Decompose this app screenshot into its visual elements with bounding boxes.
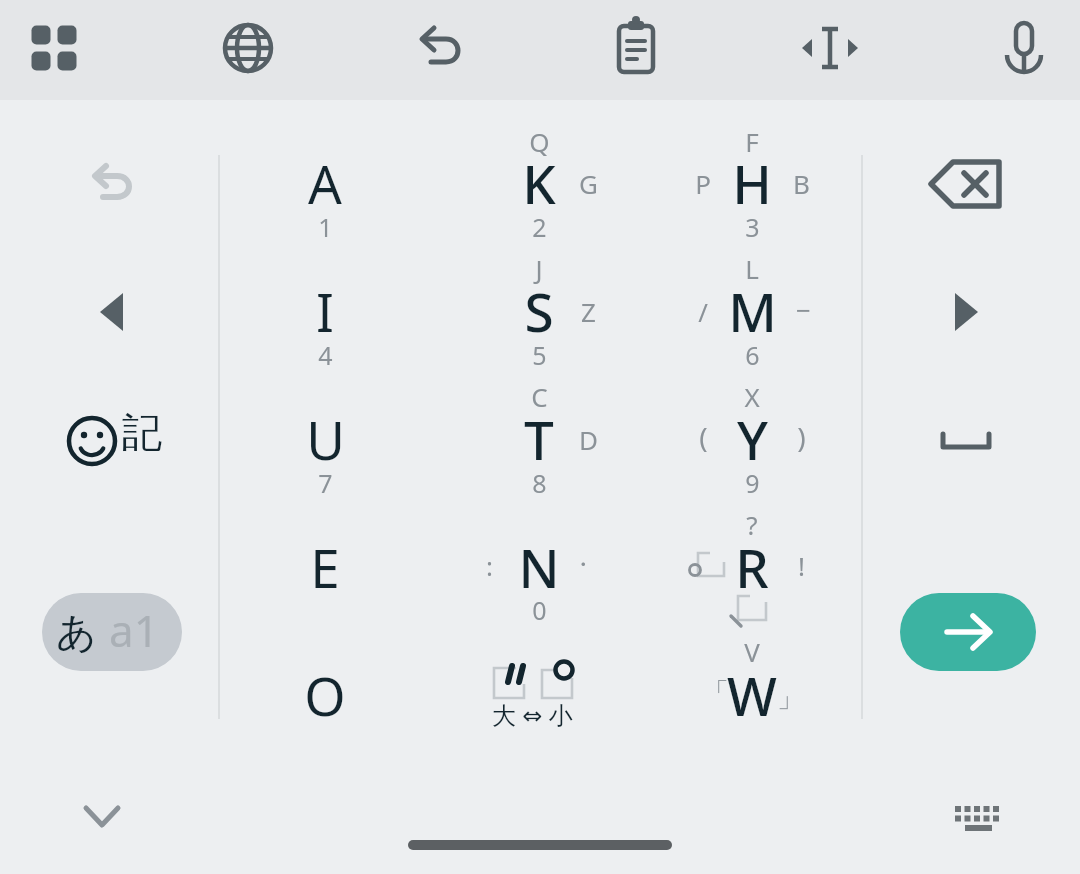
staticText: 」 — [777, 682, 803, 715]
staticText: D — [579, 422, 598, 457]
staticText: N — [518, 531, 560, 603]
button[interactable]: Undo typing — [37, 124, 187, 244]
button[interactable]: Enter — [900, 593, 1036, 671]
staticText: A — [308, 147, 342, 219]
staticText: M — [728, 275, 777, 347]
staticText: 5 — [532, 338, 547, 372]
staticText: 8 — [532, 466, 547, 500]
button[interactable]: Backspace — [886, 124, 1046, 244]
button[interactable]: 大 ⇔ 小 — [480, 660, 600, 726]
staticText: 大 ⇔ 小 — [492, 698, 573, 731]
staticText: 0 — [532, 593, 547, 627]
staticText: 3 — [745, 210, 760, 244]
staticText: 記 — [122, 407, 162, 457]
staticText: ? — [746, 507, 758, 542]
staticText: W — [727, 659, 777, 731]
button[interactable]: Undo — [387, 0, 497, 98]
staticText: X — [744, 379, 760, 414]
staticText: V — [744, 634, 760, 669]
staticText: C — [531, 379, 548, 414]
staticText: 6 — [745, 338, 760, 372]
button[interactable]: Move left — [37, 252, 187, 372]
staticText: F — [745, 124, 759, 159]
staticText: − — [796, 292, 811, 327]
staticText: 9 — [745, 466, 760, 500]
button[interactable]: Move cursor — [775, 0, 885, 98]
staticText: 1 — [318, 210, 333, 244]
staticText: あ — [56, 607, 97, 657]
staticText: ! — [798, 548, 805, 583]
staticText: T — [524, 403, 554, 475]
button[interactable]: Hide keyboard — [47, 771, 157, 861]
staticText: Y — [737, 403, 768, 475]
button[interactable]: Keyboard layouts — [0, 0, 109, 98]
staticText: 7 — [318, 466, 333, 500]
staticText: 「 — [703, 676, 729, 709]
staticText: / — [698, 294, 708, 329]
staticText: R — [735, 531, 769, 603]
staticText: : — [486, 548, 493, 583]
staticText: a1 — [109, 600, 159, 660]
staticText: Z — [581, 294, 596, 329]
staticText: J — [535, 251, 543, 286]
staticText: 4 — [318, 338, 333, 372]
button[interactable]: Space — [891, 385, 1041, 495]
staticText: S — [524, 275, 554, 347]
button[interactable]: Change language — [193, 0, 303, 98]
button[interactable]: Switch keyboard — [933, 782, 1023, 852]
staticText: I — [316, 275, 334, 347]
staticText: G — [579, 166, 598, 201]
staticText: B — [793, 166, 810, 201]
staticText: ) — [797, 418, 806, 456]
staticText: P — [695, 166, 711, 201]
staticText: K — [522, 147, 556, 219]
staticText: H — [732, 147, 772, 219]
button[interactable]: あ — [42, 593, 182, 671]
staticText: U — [306, 403, 345, 475]
staticText: ・ — [572, 551, 594, 579]
button[interactable]: Emoji and symbols — [40, 385, 190, 495]
staticText: Q — [529, 124, 550, 159]
staticText: O — [304, 659, 346, 731]
button[interactable]: Voice input — [969, 0, 1079, 98]
button[interactable]: Move right — [891, 252, 1041, 372]
staticText: E — [310, 531, 340, 603]
staticText: L — [745, 251, 759, 286]
staticText: ( — [699, 418, 708, 456]
button[interactable]: Clipboard — [581, 0, 691, 98]
staticText: 2 — [532, 210, 547, 244]
